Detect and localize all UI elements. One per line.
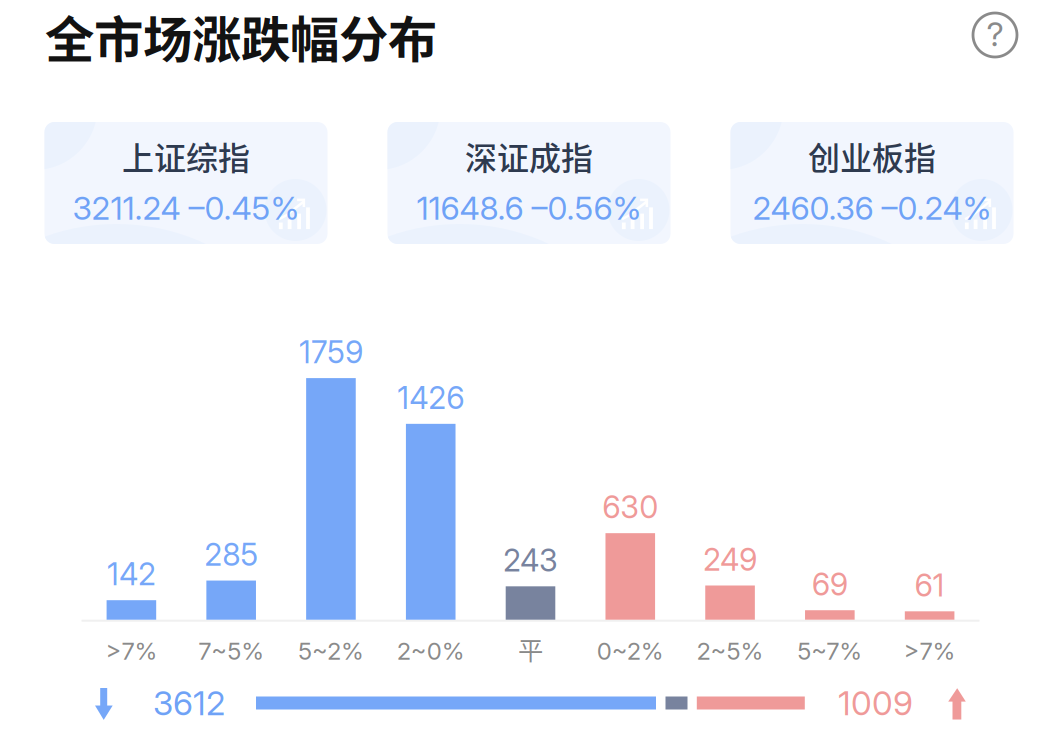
- button[interactable]: 创业板指: [730, 122, 1013, 244]
- staticText: 2~0%: [397, 636, 465, 665]
- staticText: 285: [204, 536, 258, 573]
- staticText: 上证综指: [122, 133, 250, 179]
- staticText: 3612: [153, 683, 225, 723]
- staticText: ?: [986, 14, 1003, 54]
- staticText: 5~7%: [797, 636, 862, 665]
- staticText: 630: [602, 489, 658, 526]
- button[interactable]: 上证综指: [44, 122, 327, 244]
- staticText: 创业板指: [808, 133, 936, 179]
- staticText: 5~2%: [298, 636, 364, 665]
- staticText: 2460.36 –0.24%: [752, 189, 991, 227]
- staticText: 平: [518, 631, 543, 667]
- staticText: 142: [107, 556, 156, 593]
- staticText: 全市场涨跌幅分布: [45, 0, 437, 72]
- staticText: 1009: [838, 683, 913, 723]
- staticText: >7%: [105, 636, 157, 665]
- staticText: 61: [915, 567, 945, 604]
- staticText: 7~5%: [198, 636, 264, 665]
- staticText: 1759: [299, 333, 363, 371]
- staticText: 0~2%: [597, 636, 664, 665]
- staticText: 3211.24 –0.45%: [72, 189, 299, 227]
- button[interactable]: 深证成指: [387, 122, 670, 244]
- staticText: 深证成指: [465, 133, 593, 179]
- staticText: 2~5%: [697, 636, 764, 665]
- staticText: 249: [703, 541, 757, 578]
- staticText: 1426: [397, 379, 464, 416]
- staticText: 69: [812, 566, 848, 603]
- staticText: >7%: [904, 636, 956, 665]
- staticText: 243: [503, 542, 558, 579]
- button[interactable]: Help: [968, 8, 1022, 62]
- staticText: 11648.6 –0.56%: [416, 189, 641, 227]
